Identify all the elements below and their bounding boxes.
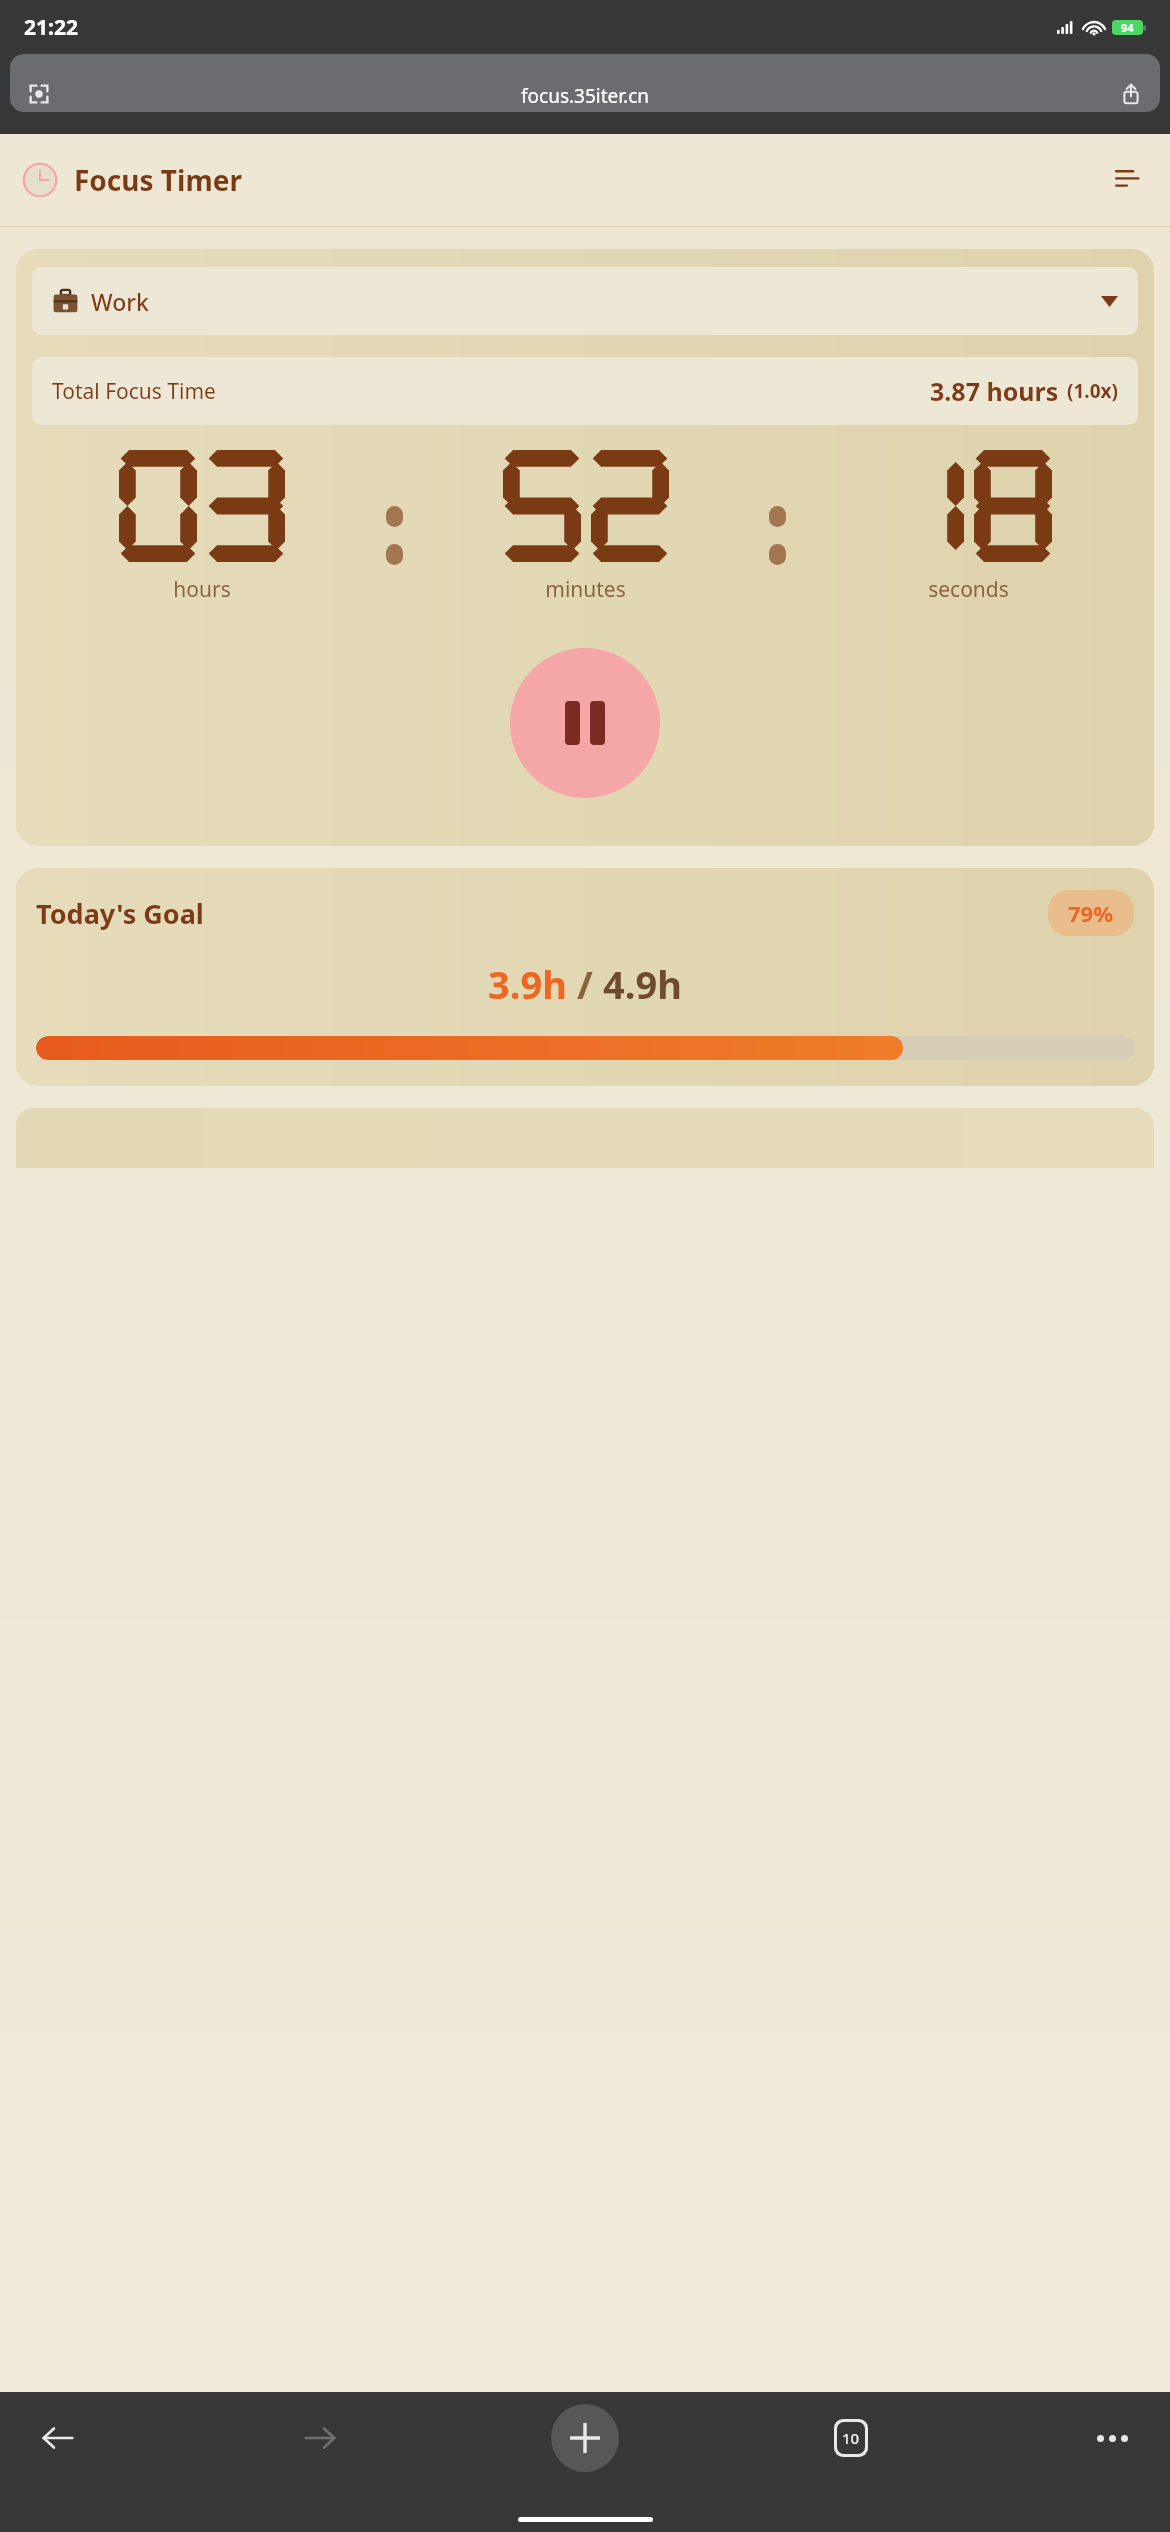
staticText: Work xyxy=(91,286,149,317)
button[interactable]: Forward xyxy=(290,2408,350,2468)
staticText: Total Focus Time xyxy=(52,377,216,406)
staticText: 21:22 xyxy=(24,13,78,42)
staticText: 10 xyxy=(842,2428,860,2448)
button[interactable]: Scan xyxy=(28,83,50,105)
staticText: 4.9h xyxy=(603,958,682,1010)
button[interactable]: Pause xyxy=(510,648,660,798)
staticText: hours xyxy=(173,575,231,604)
staticText: minutes xyxy=(545,575,626,604)
staticText: 3.9h xyxy=(488,958,567,1010)
button[interactable]: Tabs xyxy=(821,2408,881,2468)
button[interactable]: Work xyxy=(52,267,1118,335)
staticText: 94 xyxy=(1121,20,1134,35)
staticText: 3.87 hours xyxy=(930,374,1059,408)
staticText: 79% xyxy=(1068,898,1114,928)
staticText: Focus Timer xyxy=(74,161,242,199)
staticText: focus.35iter.cn xyxy=(521,83,650,109)
button[interactable]: Share xyxy=(1120,83,1142,105)
staticText: (1.0x) xyxy=(1067,378,1118,404)
button[interactable]: New tab xyxy=(551,2404,619,2472)
button[interactable]: Menu xyxy=(1108,160,1148,200)
staticText: Today's Goal xyxy=(36,895,204,932)
button[interactable]: More xyxy=(1082,2408,1142,2468)
staticText: / xyxy=(567,958,603,1010)
staticText: seconds xyxy=(928,575,1009,604)
button[interactable]: Back xyxy=(28,2408,88,2468)
